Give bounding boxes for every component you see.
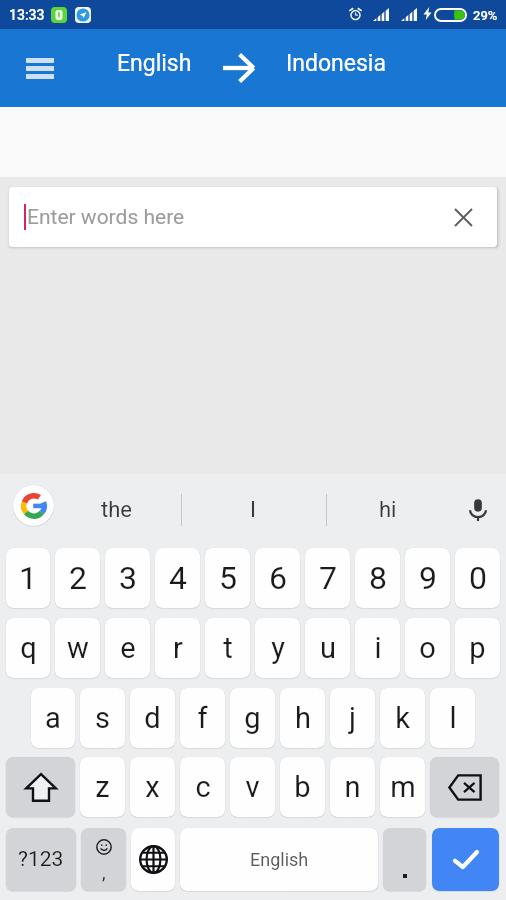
button[interactable]: c — [180, 757, 225, 817]
staticText: 3 — [119, 559, 137, 597]
button[interactable]: z — [80, 757, 125, 817]
button[interactable]: 1 — [6, 548, 50, 608]
button[interactable]: o — [405, 618, 450, 678]
staticText: s — [95, 701, 110, 735]
staticText: x — [145, 770, 160, 804]
button[interactable]: d — [130, 688, 175, 748]
staticText: 13:33 — [9, 7, 45, 23]
button[interactable]: k — [380, 688, 425, 748]
button[interactable]: 0 — [455, 548, 500, 608]
button[interactable]: 2 — [55, 548, 100, 608]
button[interactable]: English — [180, 828, 378, 891]
button[interactable]: x — [130, 757, 175, 817]
button[interactable]: n — [330, 757, 375, 817]
button[interactable]: p — [455, 618, 500, 678]
button[interactable]: y — [255, 618, 300, 678]
staticText: the — [101, 497, 132, 523]
staticText: w — [67, 631, 89, 665]
staticText: d — [144, 701, 161, 735]
staticText: a — [45, 701, 61, 735]
staticText: ?123 — [18, 847, 64, 872]
button[interactable]: 6 — [255, 548, 300, 608]
staticText: 9 — [419, 559, 437, 597]
button[interactable]: r — [155, 618, 200, 678]
button[interactable]: w — [55, 618, 100, 678]
button[interactable]: s — [80, 688, 125, 748]
button[interactable]: u — [305, 618, 350, 678]
staticText: f — [197, 701, 208, 735]
button[interactable]: Shift — [6, 757, 75, 817]
staticText: v — [245, 770, 260, 804]
staticText: 7 — [319, 559, 337, 597]
button[interactable]: b — [280, 757, 325, 817]
staticText: o — [419, 631, 436, 665]
staticText: q — [20, 631, 37, 665]
button[interactable]: Swap languages — [213, 48, 265, 88]
button[interactable]: g — [230, 688, 275, 748]
staticText: 29% — [473, 8, 498, 23]
button[interactable]: 9 — [405, 548, 450, 608]
button[interactable]: Voice input — [455, 487, 501, 533]
staticText: z — [95, 770, 110, 804]
staticText: 6 — [269, 559, 287, 597]
button[interactable]: English — [109, 42, 200, 85]
button[interactable]: Indonesia — [278, 42, 394, 85]
button[interactable]: f — [180, 688, 225, 748]
staticText: hi — [379, 497, 397, 523]
button[interactable]: 8 — [355, 548, 400, 608]
button[interactable]: 4 — [155, 548, 200, 608]
button[interactable]: t — [205, 618, 250, 678]
button[interactable]: q — [6, 618, 50, 678]
button[interactable]: Done — [432, 828, 499, 891]
button[interactable]: h — [280, 688, 325, 748]
staticText: , — [102, 862, 106, 883]
button[interactable]: l — [430, 688, 475, 748]
staticText: b — [294, 770, 311, 804]
button[interactable]: I — [186, 474, 320, 546]
staticText: Indonesia — [286, 50, 386, 77]
button[interactable]: j — [330, 688, 375, 748]
staticText: r — [173, 631, 183, 665]
button[interactable]: 5 — [205, 548, 250, 608]
staticText: 2 — [69, 559, 87, 597]
staticText: English — [117, 50, 192, 77]
staticText: e — [120, 631, 136, 665]
staticText: p — [469, 631, 486, 665]
staticText: c — [195, 770, 211, 804]
button[interactable]: Backspace — [430, 757, 499, 817]
staticText: h — [295, 701, 311, 735]
button[interactable]: a — [31, 688, 75, 748]
staticText: Enter words here — [27, 205, 185, 230]
staticText: n — [344, 770, 361, 804]
button[interactable]: Clear text — [443, 197, 483, 237]
button[interactable]: i — [355, 618, 400, 678]
button[interactable]: Change keyboard language — [131, 828, 175, 891]
staticText: k — [395, 701, 410, 735]
button[interactable]: 3 — [105, 548, 150, 608]
button[interactable]: Period — [383, 828, 426, 891]
staticText: 5 — [219, 559, 237, 597]
button[interactable]: v — [230, 757, 275, 817]
staticText: i — [374, 631, 382, 665]
button[interactable]: Open navigation menu — [16, 44, 64, 92]
button[interactable]: Google search — [13, 485, 54, 526]
staticText: 8 — [369, 559, 387, 597]
button[interactable]: Emoji and comma — [81, 828, 126, 891]
button[interactable]: the — [56, 474, 177, 546]
button[interactable]: Enter words here — [9, 187, 497, 247]
staticText: g — [244, 701, 261, 735]
button[interactable]: e — [105, 618, 150, 678]
button[interactable]: 7 — [305, 548, 350, 608]
staticText: 4 — [169, 559, 187, 597]
staticText: m — [390, 770, 416, 804]
staticText: English — [250, 849, 309, 870]
button[interactable]: m — [380, 757, 425, 817]
button[interactable]: hi — [330, 474, 446, 546]
staticText: u — [320, 631, 336, 665]
button[interactable]: ?123 — [6, 828, 76, 891]
staticText: y — [271, 631, 285, 665]
staticText: I — [250, 497, 256, 523]
staticText: 1 — [19, 559, 37, 597]
staticText: l — [449, 701, 457, 735]
staticText: j — [349, 701, 356, 735]
